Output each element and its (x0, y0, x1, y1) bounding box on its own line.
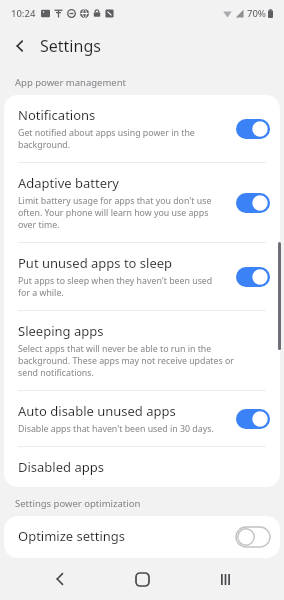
button[interactable]: Switch off (236, 527, 270, 547)
button[interactable]: Back (0, 26, 40, 66)
button[interactable]: Home (119, 558, 165, 600)
button[interactable]: Sleeping apps (4, 311, 280, 390)
staticText: Get notified about apps using power in t… (18, 127, 195, 151)
staticText: 10:24 (11, 7, 36, 20)
button[interactable]: Switch on (236, 193, 270, 213)
button[interactable]: Switch on (236, 409, 270, 429)
staticText: Notifications (18, 106, 96, 124)
staticText: 70% (247, 7, 266, 20)
button[interactable]: Optimize settings (4, 516, 280, 558)
staticText: Optimize settings (18, 527, 126, 545)
staticText: Put unused apps to sleep (18, 254, 173, 272)
staticText: Select apps that will never be able to r… (18, 343, 234, 379)
staticText: Adaptive battery (18, 174, 119, 192)
button[interactable]: Back (37, 558, 83, 600)
button[interactable]: Put unused apps to sleep (4, 243, 280, 310)
button[interactable]: Switch on (236, 267, 270, 287)
button[interactable]: Recent apps (202, 558, 248, 600)
staticText: App power management (15, 76, 126, 89)
staticText: Limit battery usage for apps that you do… (18, 195, 212, 231)
staticText: Auto disable unused apps (18, 402, 176, 420)
staticText: Disabled apps (18, 458, 104, 476)
staticText: Disable apps that haven't been used in 3… (18, 423, 214, 435)
button[interactable]: Adaptive battery (4, 163, 280, 242)
button[interactable]: Switch on (236, 119, 270, 139)
button[interactable]: Disabled apps (4, 447, 280, 487)
staticText: Put apps to sleep when they haven't been… (18, 275, 213, 299)
staticText: Settings (40, 35, 101, 57)
staticText: Sleeping apps (18, 322, 104, 340)
button[interactable]: Notifications (4, 95, 280, 162)
button[interactable]: Auto disable unused apps (4, 391, 280, 446)
staticText: Settings power optimization (15, 497, 141, 510)
